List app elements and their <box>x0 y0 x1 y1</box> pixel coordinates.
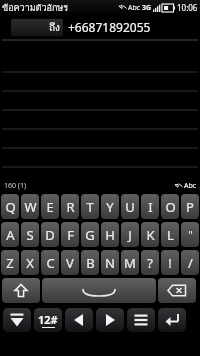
staticText: G <box>85 226 95 244</box>
staticText: X <box>26 254 34 272</box>
button[interactable]: Move left <box>65 308 93 332</box>
staticText: Q <box>5 198 16 216</box>
button[interactable]: Backspace <box>158 278 196 303</box>
staticText: D <box>45 226 55 244</box>
staticText: I <box>148 198 153 216</box>
button[interactable]: T <box>81 194 99 219</box>
staticText: H <box>105 226 115 244</box>
staticText: B <box>86 254 95 272</box>
button[interactable]: N <box>101 250 119 275</box>
staticText: K <box>146 226 155 244</box>
staticText: 3G <box>142 3 152 13</box>
staticText: Z <box>6 254 14 272</box>
button[interactable]: G <box>81 222 99 247</box>
staticText: ? <box>147 254 153 272</box>
button[interactable]: W <box>21 194 39 219</box>
button[interactable]: A <box>1 222 19 247</box>
button[interactable]: / <box>181 250 199 275</box>
button[interactable]: J <box>121 222 139 247</box>
button[interactable]: B <box>81 250 99 275</box>
staticText: T <box>86 198 94 216</box>
button[interactable]: C <box>41 250 59 275</box>
staticText: S <box>26 226 34 244</box>
button[interactable]: Z <box>1 250 19 275</box>
button[interactable]: K <box>141 222 159 247</box>
staticText: O <box>165 198 176 216</box>
button[interactable]: L <box>161 222 179 247</box>
staticText: " <box>188 227 193 242</box>
staticText: L <box>167 226 174 244</box>
staticText: U <box>125 198 135 216</box>
staticText: ถึง <box>49 20 60 36</box>
button[interactable]: " <box>181 222 199 247</box>
button[interactable]: P <box>181 194 199 219</box>
staticText: W <box>24 198 37 216</box>
button[interactable]: Space <box>42 278 156 303</box>
staticText: E <box>46 198 54 216</box>
button[interactable]: O <box>161 194 179 219</box>
staticText: ข้อความตัวอักษร <box>2 1 69 15</box>
staticText: F <box>67 226 74 244</box>
staticText: 10:06 <box>177 2 198 13</box>
button[interactable]: V <box>61 250 79 275</box>
button[interactable]: Shift <box>2 278 40 303</box>
staticText: 12# <box>38 312 58 327</box>
button[interactable]: I <box>141 194 159 219</box>
staticText: +66871892055 <box>68 19 151 35</box>
button[interactable]: S <box>21 222 39 247</box>
staticText: A <box>6 226 15 244</box>
button[interactable]: F <box>61 222 79 247</box>
staticText: N <box>105 254 115 272</box>
staticText: / <box>188 254 193 272</box>
staticText: M <box>124 254 136 272</box>
button[interactable]: H <box>101 222 119 247</box>
staticText: 160 (1) <box>4 181 27 191</box>
staticText: Abc <box>184 181 197 191</box>
staticText: ! <box>168 254 172 272</box>
button[interactable]: Move right <box>96 308 124 332</box>
button[interactable]: Hide keyboard <box>3 308 31 332</box>
button[interactable]: Enter <box>158 308 186 332</box>
button[interactable]: U <box>121 194 139 219</box>
button[interactable]: ? <box>141 250 159 275</box>
button[interactable]: ! <box>161 250 179 275</box>
staticText: R <box>66 198 75 216</box>
button[interactable]: Menu <box>127 308 155 332</box>
button[interactable]: ถึง <box>11 19 63 36</box>
staticText: C <box>46 254 55 272</box>
staticText: P <box>186 198 194 216</box>
button[interactable] <box>0 39 200 179</box>
button[interactable]: E <box>41 194 59 219</box>
button[interactable]: D <box>41 222 59 247</box>
staticText: V <box>66 254 74 272</box>
button[interactable]: Q <box>1 194 19 219</box>
button[interactable]: X <box>21 250 39 275</box>
staticText: J <box>128 226 132 244</box>
button[interactable]: Y <box>101 194 119 219</box>
button[interactable]: M <box>121 250 139 275</box>
button[interactable]: 12# <box>34 308 62 332</box>
button[interactable]: R <box>61 194 79 219</box>
staticText: Abc <box>128 3 141 13</box>
staticText: Y <box>106 198 114 216</box>
